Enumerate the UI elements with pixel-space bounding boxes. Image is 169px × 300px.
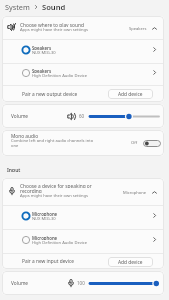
staticText: Input (7, 167, 21, 172)
staticText: Speakers (32, 45, 52, 50)
staticText: NUX MIG-30 (32, 216, 56, 221)
button[interactable]: Volume slider (90, 112, 159, 121)
staticText: Add device (118, 91, 143, 98)
button[interactable]: Choose where to play sound (2, 16, 164, 39)
button[interactable]: Speakers (2, 64, 164, 85)
staticText: Mono audio (11, 133, 39, 138)
staticText: recording (20, 188, 42, 193)
staticText: Choose a device for speaking or (20, 183, 92, 188)
button[interactable]: Volume slider (90, 279, 159, 288)
staticText: Pair a new input device (22, 258, 108, 265)
staticText: Combine left and right audio channels in… (11, 138, 94, 143)
staticText: Volume (11, 113, 29, 120)
button[interactable]: Speakers (2, 40, 164, 63)
staticText: High Definition Audio Device (32, 240, 88, 245)
button[interactable]: Choose a device for speaking or (2, 178, 164, 205)
staticText: Speakers (129, 26, 147, 32)
staticText: Pair a new output device (22, 91, 108, 98)
button[interactable]: Microphone (2, 206, 164, 229)
button[interactable]: Add device (108, 89, 153, 99)
staticText: Apps might have their own settings (20, 193, 89, 198)
staticText: Apps might have their own settings (20, 27, 89, 32)
staticText: one (11, 143, 19, 148)
staticText: Off (131, 140, 138, 146)
button[interactable]: Mono audio toggle, off (143, 140, 161, 147)
staticText: Sound (42, 2, 66, 12)
button[interactable]: Microphone (2, 230, 164, 253)
staticText: High Definition Audio Device (32, 73, 88, 78)
staticText: Microphone (32, 211, 58, 216)
staticText: Volume (11, 280, 29, 287)
staticText: 100 (77, 280, 85, 286)
button[interactable]: Add device (108, 257, 153, 267)
staticText: NUX MIG-30 (32, 50, 56, 55)
staticText: Microphone (32, 235, 58, 240)
staticText: Add device (118, 259, 143, 266)
staticText: Speakers (32, 68, 52, 73)
staticText: Microphone (123, 190, 147, 196)
staticText: 60 (79, 113, 85, 119)
staticText: Choose where to play sound (20, 22, 84, 27)
button[interactable]: System (5, 2, 30, 12)
